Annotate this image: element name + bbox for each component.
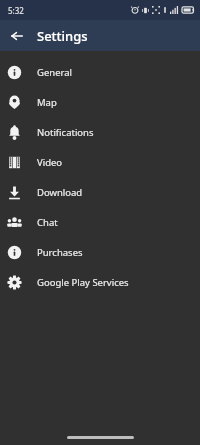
staticText: Purchases (37, 246, 83, 259)
staticText: Settings (37, 27, 88, 45)
staticText: General (37, 66, 73, 79)
button[interactable]: Back (4, 23, 30, 49)
staticText: 5:32 (8, 5, 24, 16)
staticText: Download (37, 186, 83, 199)
button[interactable]: Purchases (0, 237, 200, 267)
button[interactable]: Download (0, 177, 200, 207)
button[interactable]: General (0, 57, 200, 87)
staticText: Google Play Services (37, 276, 129, 289)
button[interactable]: Video (0, 147, 200, 177)
button[interactable]: Map (0, 87, 200, 117)
staticText: Notifications (37, 126, 94, 139)
button[interactable]: Google Play Services (0, 267, 200, 297)
staticText: Map (37, 96, 57, 109)
staticText: Video (37, 156, 63, 169)
button[interactable]: Chat (0, 207, 200, 237)
button[interactable]: Notifications (0, 117, 200, 147)
staticText: Chat (37, 216, 58, 229)
